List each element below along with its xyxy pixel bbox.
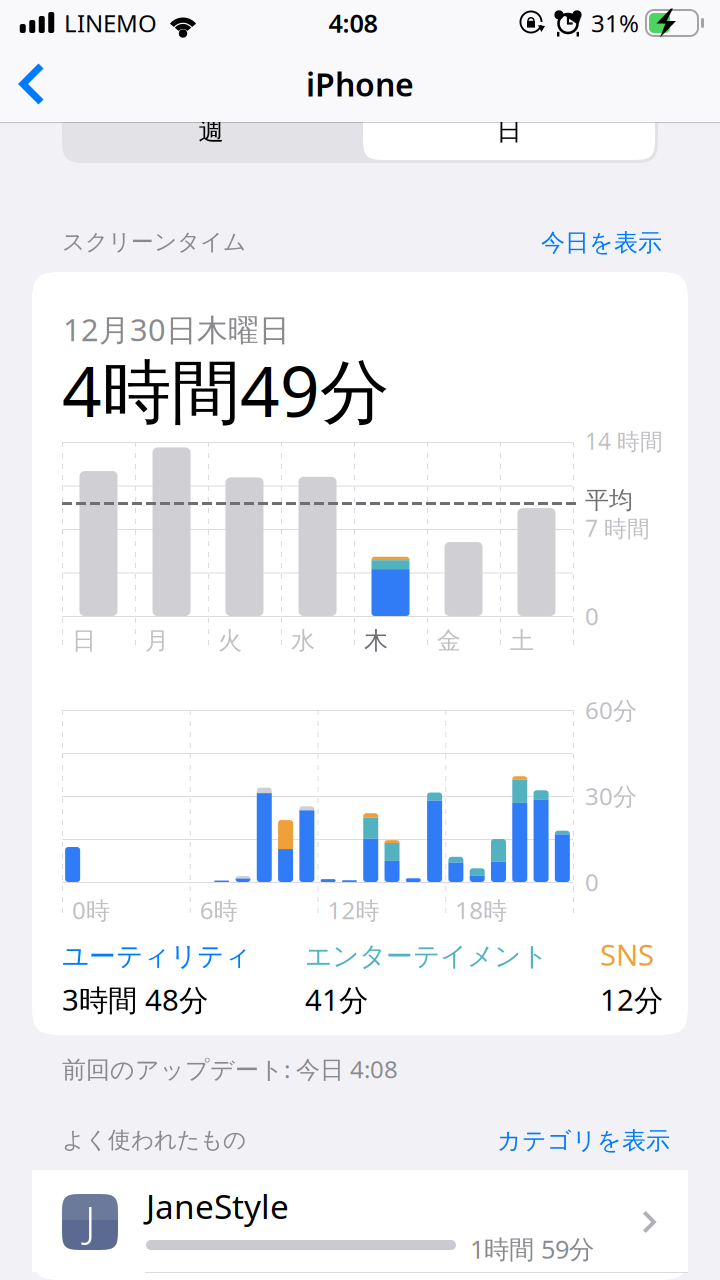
staticText: スクリーンタイム <box>62 228 246 256</box>
staticText: 3時間 48分 <box>62 980 208 1019</box>
staticText: 7 時間 <box>585 513 650 543</box>
staticText: SNS <box>600 935 654 974</box>
staticText: 日 <box>72 626 96 655</box>
staticText: 水 <box>291 626 315 655</box>
staticText: ユーティリティ <box>62 940 251 973</box>
staticText: 日 <box>496 115 521 146</box>
staticText: 0 <box>585 600 599 632</box>
staticText: 月 <box>145 626 169 655</box>
staticText: 60分 <box>585 694 637 726</box>
staticText: 今日を表示 <box>541 228 662 257</box>
staticText: 12分 <box>600 980 663 1019</box>
staticText: JaneStyle <box>146 1184 289 1228</box>
staticText: 12月30日木曜日 <box>63 309 290 350</box>
staticText: 14 時間 <box>585 426 663 456</box>
staticText: J <box>85 1194 95 1248</box>
staticText: 12時 <box>327 894 379 926</box>
staticText: 1時間 59分 <box>470 1232 594 1266</box>
button[interactable]: 今日を表示 <box>537 222 666 263</box>
staticText: エンターテイメント <box>305 940 548 973</box>
staticText: 金 <box>437 626 461 655</box>
button[interactable]: カテゴリを表示 <box>493 1120 674 1161</box>
button[interactable]: Back <box>0 46 75 122</box>
staticText: 平均 <box>585 485 633 515</box>
staticText: よく使われたもの <box>62 1126 246 1154</box>
staticText: 31% <box>591 7 639 39</box>
staticText: 4時間49分 <box>62 344 389 436</box>
staticText: 18時 <box>455 894 507 926</box>
staticText: 41分 <box>305 980 368 1019</box>
staticText: 6時 <box>200 894 238 926</box>
staticText: 土 <box>510 626 534 655</box>
staticText: 0 <box>585 866 599 898</box>
button[interactable]: 日 <box>360 99 658 163</box>
staticText: LINEMO <box>64 7 157 39</box>
staticText: 週 <box>198 115 223 146</box>
button[interactable]: 週 <box>62 99 360 163</box>
staticText: 4:08 <box>328 6 377 40</box>
staticText: 木 <box>364 626 388 655</box>
button[interactable]: J <box>32 1170 688 1272</box>
staticText: 0時 <box>72 894 110 926</box>
staticText: 30分 <box>585 780 637 812</box>
staticText: 前回のアップデート: 今日 4:08 <box>62 1053 398 1085</box>
staticText: iPhone <box>306 63 414 105</box>
staticText: カテゴリを表示 <box>497 1126 670 1155</box>
staticText: 火 <box>218 626 242 655</box>
